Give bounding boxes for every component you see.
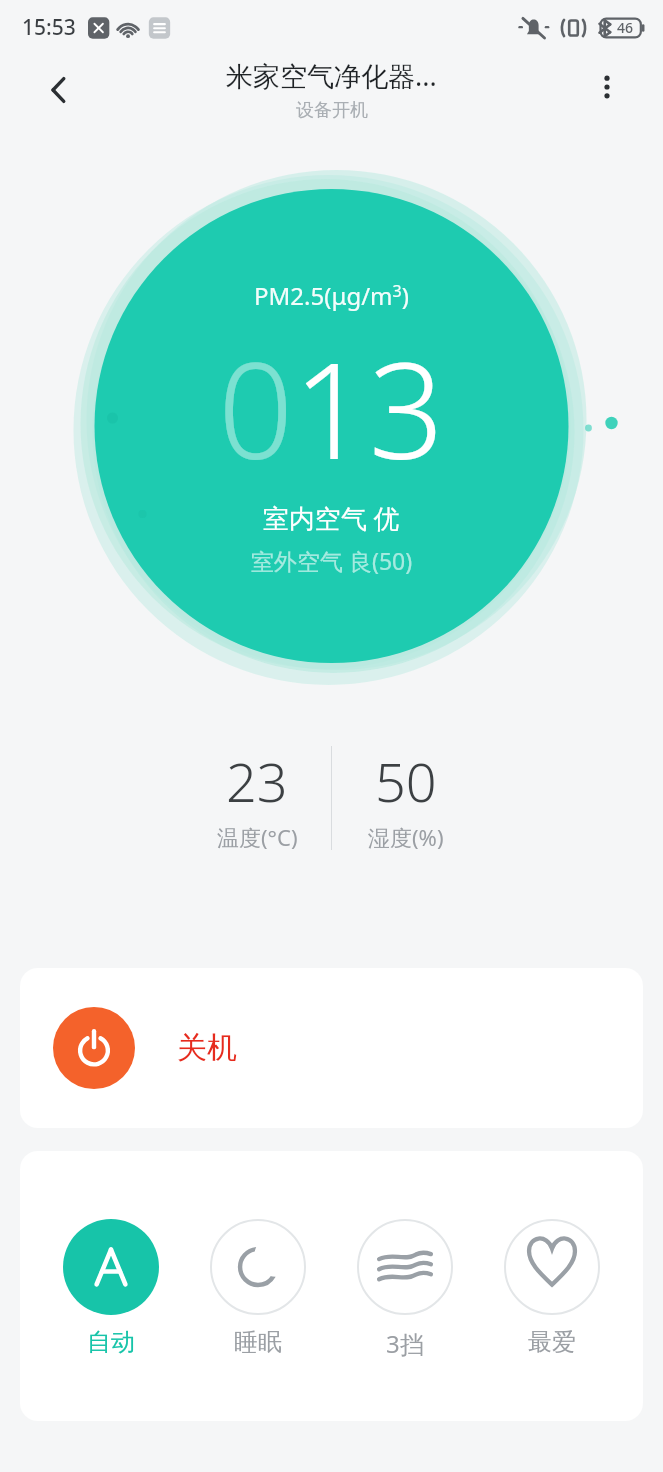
staticText: 温度(°C) bbox=[217, 822, 298, 852]
staticText: 设备开机 bbox=[296, 99, 368, 122]
staticText: 3挡 bbox=[386, 1327, 424, 1360]
staticText: 睡眠 bbox=[234, 1327, 282, 1357]
button[interactable]: 关机 bbox=[20, 968, 643, 1128]
button[interactable]: 自动 bbox=[55, 1219, 167, 1357]
button[interactable]: 最爱 bbox=[496, 1219, 608, 1357]
staticText: 室内空气 优 bbox=[263, 500, 400, 536]
staticText: 关机 bbox=[177, 1029, 237, 1067]
button[interactable]: 3挡 bbox=[349, 1219, 461, 1360]
staticText: 室外空气 良(50) bbox=[251, 545, 413, 576]
staticText: 米家空气净化器... bbox=[226, 57, 437, 94]
button[interactable]: Back bbox=[26, 57, 92, 123]
staticText: 15:53 bbox=[22, 13, 76, 42]
staticText: 湿度(%) bbox=[368, 822, 444, 852]
button[interactable]: More options bbox=[577, 57, 637, 117]
staticText: PM2.5(μg/m3) bbox=[254, 279, 409, 312]
staticText: 23 bbox=[226, 744, 288, 818]
staticText: 最爱 bbox=[528, 1327, 576, 1357]
staticText: 013 bbox=[218, 318, 445, 498]
staticText: 50 bbox=[375, 744, 437, 818]
staticText: 46 bbox=[617, 18, 634, 37]
button[interactable]: 睡眠 bbox=[202, 1219, 314, 1357]
staticText: 自动 bbox=[87, 1327, 135, 1357]
